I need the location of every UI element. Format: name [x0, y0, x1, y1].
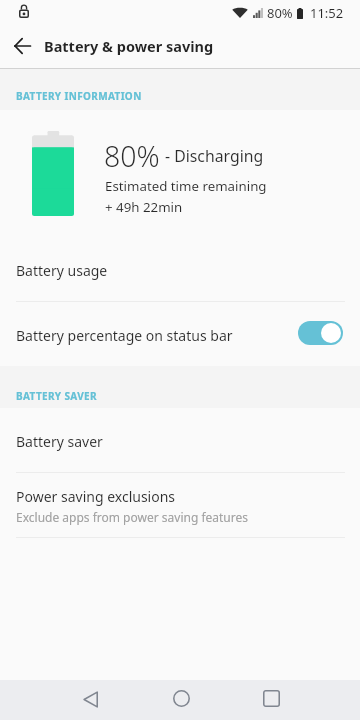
staticText: Battery saver: [16, 432, 103, 451]
staticText: Estimated time remaining: [105, 177, 267, 195]
button[interactable]: Power saving exclusions: [0, 473, 360, 537]
staticText: 80%: [104, 137, 160, 176]
staticText: Power saving exclusions: [16, 487, 176, 506]
staticText: - Discharging: [165, 145, 264, 167]
staticText: BATTERY INFORMATION: [16, 89, 142, 103]
staticText: 80%: [267, 4, 293, 22]
button[interactable]: Back: [0, 26, 45, 68]
button[interactable]: Battery usage: [0, 241, 360, 301]
staticText: Battery percentage on status bar: [16, 326, 233, 345]
button[interactable]: Battery percentage on status bar: [0, 302, 360, 366]
button[interactable]: Back: [63, 680, 117, 720]
staticText: Battery & power saving: [44, 36, 214, 56]
staticText: BATTERY SAVER: [16, 389, 97, 403]
button[interactable]: Battery information: [0, 110, 360, 241]
staticText: Battery usage: [16, 261, 108, 280]
button[interactable]: Home: [154, 680, 208, 720]
staticText: Exclude apps from power saving features: [16, 509, 248, 525]
button[interactable]: Battery saver: [0, 408, 360, 472]
staticText: 11:52: [310, 4, 344, 22]
button[interactable]: Recent apps: [244, 680, 298, 720]
staticText: + 49h 22min: [105, 198, 183, 216]
